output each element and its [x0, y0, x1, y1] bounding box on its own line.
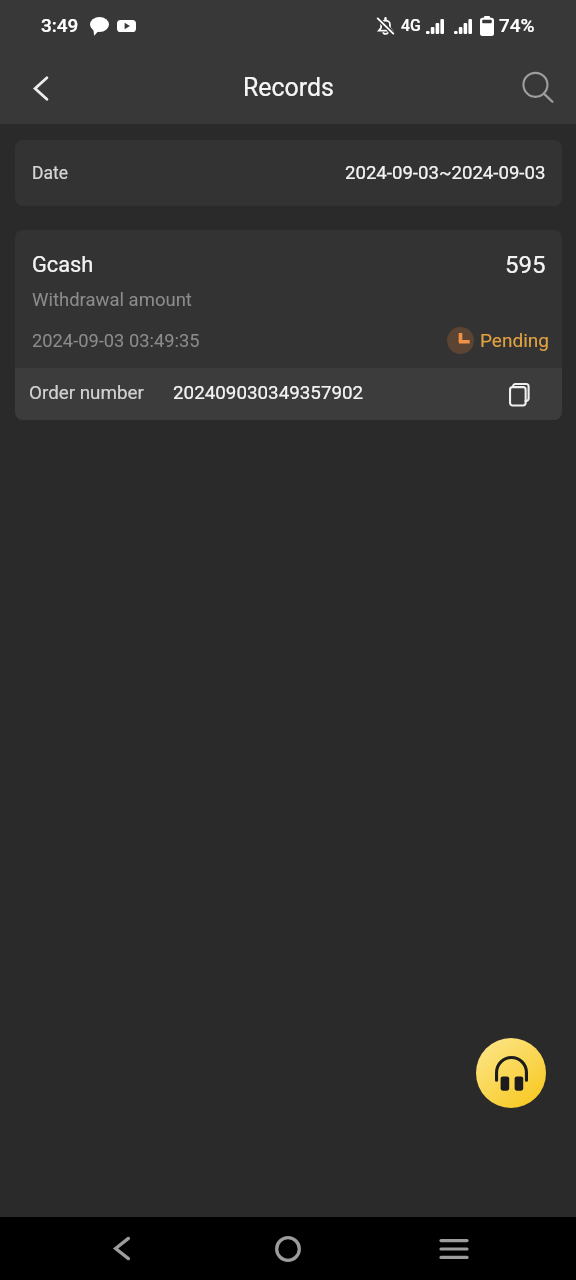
- staticText: Pending: [480, 329, 549, 351]
- staticText: 74%: [499, 14, 535, 36]
- button[interactable]: Date: [15, 140, 562, 206]
- staticText: Records: [243, 73, 334, 102]
- button[interactable]: Back: [17, 64, 65, 112]
- staticText: Withdrawal amount: [32, 289, 192, 311]
- button[interactable]: Back: [74, 1217, 170, 1280]
- staticText: Date: [32, 163, 69, 184]
- staticText: 4G: [401, 16, 421, 35]
- staticText: 2024-09-03 03:49:35: [32, 330, 200, 351]
- button[interactable]: Customer service: [476, 1038, 546, 1108]
- button[interactable]: Search: [514, 64, 562, 112]
- staticText: Order number: [29, 382, 144, 404]
- staticText: 595: [505, 251, 546, 279]
- button[interactable]: Home: [240, 1217, 336, 1280]
- button[interactable]: Gcash: [15, 230, 562, 420]
- staticText: 2024-09-03~2024-09-03: [345, 162, 546, 184]
- button[interactable]: Recent apps: [406, 1217, 502, 1280]
- staticText: 3:49: [41, 14, 79, 36]
- button[interactable]: Copy order number: [501, 376, 537, 412]
- staticText: Gcash: [32, 252, 94, 278]
- staticText: 202409030349357902: [173, 382, 364, 404]
